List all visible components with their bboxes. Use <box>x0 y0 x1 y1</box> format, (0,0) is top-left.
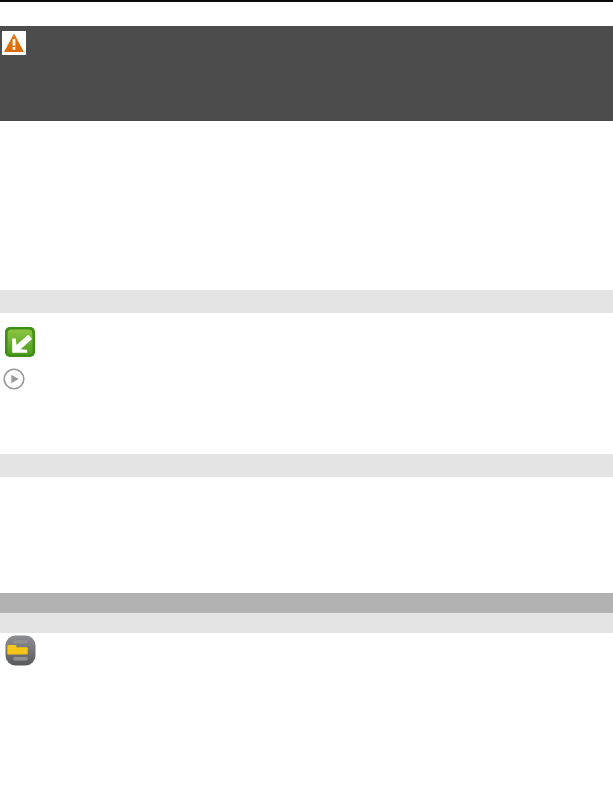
button[interactable]: Warning <box>0 26 613 121</box>
button[interactable]: Open folder <box>4 634 37 667</box>
button[interactable]: Play <box>3 368 25 390</box>
button[interactable]: Collapse <box>0 313 613 454</box>
button[interactable]: Collapse <box>5 327 35 357</box>
button[interactable]: Open folder <box>0 633 613 667</box>
button[interactable]: Warning <box>2 31 26 55</box>
